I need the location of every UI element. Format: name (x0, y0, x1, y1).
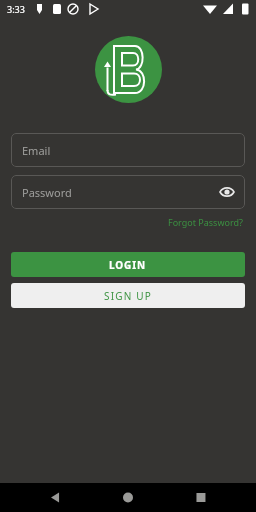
staticText: 3:33 (7, 3, 25, 15)
button[interactable]: Forgot Password? (166, 214, 245, 230)
staticText: SIGN UP (104, 289, 153, 303)
button[interactable]: LOGIN (11, 252, 245, 277)
button[interactable]: Show password (217, 182, 237, 202)
button[interactable]: SIGN UP (11, 283, 245, 308)
button[interactable]: Password (11, 175, 245, 209)
staticText: Email (22, 143, 51, 158)
button[interactable]: Email (11, 133, 245, 167)
staticText: Password (22, 185, 72, 200)
staticText: Forgot Password? (168, 216, 243, 228)
staticText: LOGIN (109, 258, 147, 272)
